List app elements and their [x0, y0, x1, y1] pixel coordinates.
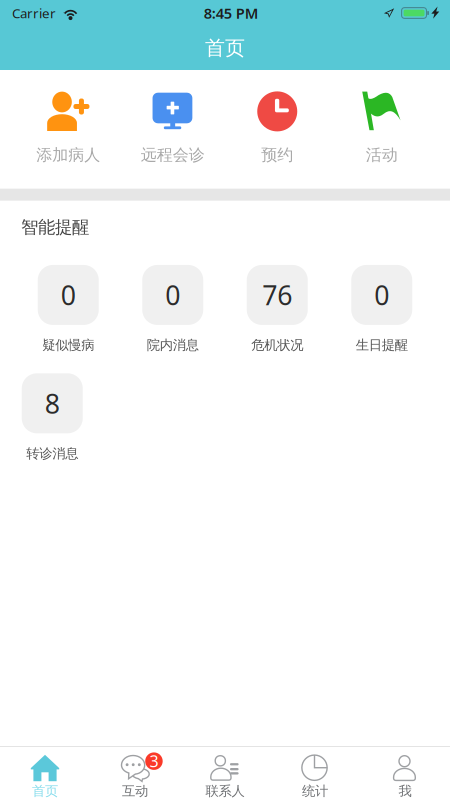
button[interactable]: 联系人: [180, 748, 270, 799]
button[interactable]: 添加病人: [16, 91, 120, 165]
button[interactable]: 8: [0, 373, 104, 462]
staticText: 统计: [302, 783, 328, 799]
button[interactable]: 0: [16, 265, 120, 353]
staticText: 疑似慢病: [42, 337, 94, 353]
staticText: 76: [262, 277, 292, 313]
staticText: 院内消息: [147, 337, 199, 353]
staticText: 互动: [122, 783, 148, 799]
button[interactable]: 首页: [0, 748, 90, 799]
staticText: 8:45 PM: [204, 3, 259, 23]
staticText: Carrier: [12, 4, 56, 22]
staticText: 远程会诊: [141, 145, 205, 165]
staticText: 危机状况: [251, 337, 303, 353]
staticText: 3: [149, 750, 158, 772]
button[interactable]: 76: [225, 265, 329, 353]
staticText: 0: [61, 277, 76, 313]
staticText: 首页: [205, 36, 245, 60]
button[interactable]: 预约: [225, 91, 329, 165]
staticText: 8: [45, 386, 60, 421]
staticText: 0: [374, 277, 389, 313]
staticText: 0: [165, 277, 180, 313]
staticText: 首页: [32, 783, 58, 799]
staticText: 预约: [261, 145, 293, 165]
staticText: 联系人: [205, 783, 244, 799]
staticText: 活动: [366, 145, 398, 165]
staticText: 添加病人: [36, 145, 100, 165]
button[interactable]: 活动: [329, 91, 434, 165]
button[interactable]: 我: [360, 748, 450, 799]
button[interactable]: 3: [90, 748, 180, 799]
button[interactable]: 统计: [270, 748, 360, 799]
staticText: 智能提醒: [21, 217, 89, 238]
staticText: 转诊消息: [26, 445, 78, 462]
staticText: 生日提醒: [356, 337, 408, 353]
button[interactable]: 0: [120, 265, 225, 353]
staticText: 我: [398, 783, 411, 799]
button[interactable]: 远程会诊: [120, 91, 225, 165]
button[interactable]: 0: [329, 265, 434, 353]
